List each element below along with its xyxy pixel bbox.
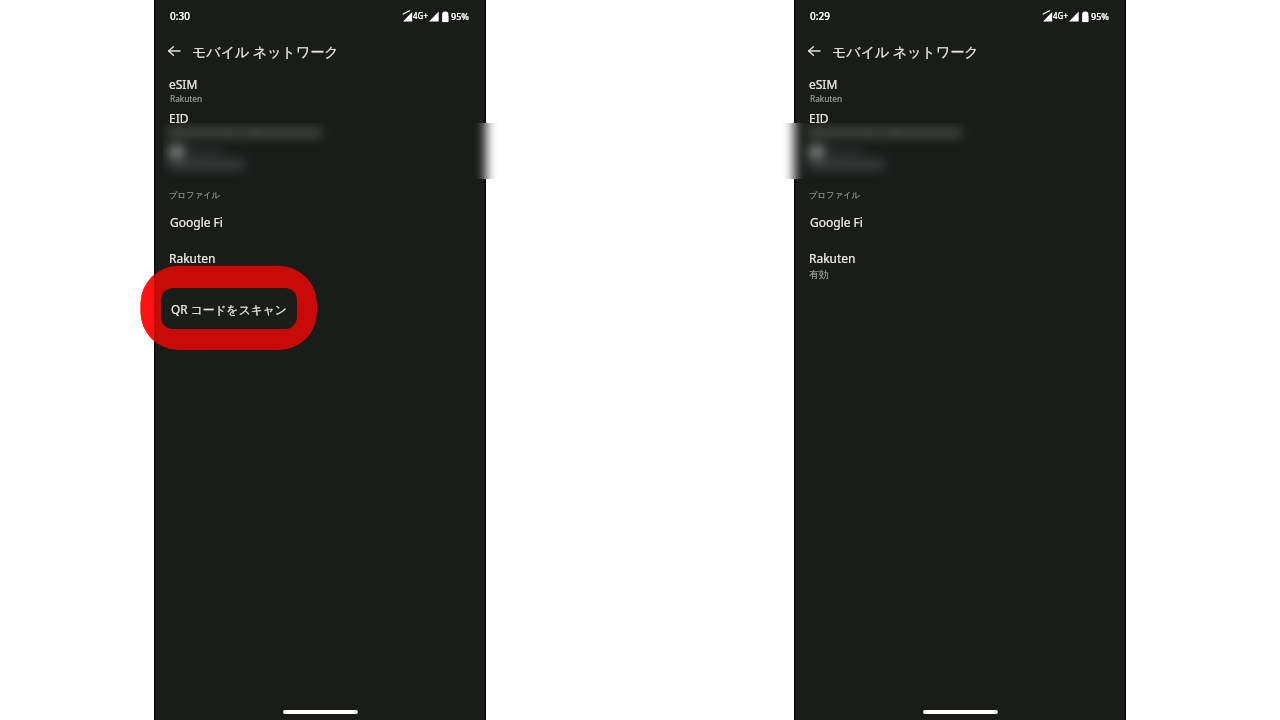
staticText: QR コードをスキャン xyxy=(171,301,287,317)
staticText: 4G+ xyxy=(413,10,428,21)
button[interactable]: EID xyxy=(794,106,1126,182)
staticText: モバイル ネットワーク xyxy=(832,42,979,61)
staticText: 0:29 xyxy=(810,9,830,23)
button[interactable]: Rakuten xyxy=(794,244,1126,282)
staticText: プロファイル xyxy=(169,190,220,200)
staticText: EID xyxy=(169,110,189,126)
button[interactable]: Rakuten xyxy=(154,244,486,282)
staticText: モバイル ネットワーク xyxy=(192,42,339,61)
staticText: Rakuten xyxy=(170,93,203,104)
staticText: プロファイル xyxy=(809,190,860,200)
button[interactable]: eSIM xyxy=(794,68,1126,106)
staticText: Google Fi xyxy=(810,214,863,230)
staticText: 95% xyxy=(451,10,469,22)
button[interactable]: Back xyxy=(800,37,828,65)
staticText: Rakuten xyxy=(810,93,843,104)
button[interactable]: Google Fi xyxy=(794,206,1126,244)
staticText: Rakuten xyxy=(169,250,216,266)
button[interactable]: EID xyxy=(154,106,486,182)
staticText: Rakuten xyxy=(809,250,856,266)
button[interactable]: QR コードをスキャン xyxy=(161,288,297,329)
button[interactable]: eSIM xyxy=(154,68,486,106)
staticText: 4G+ xyxy=(1053,10,1068,21)
button[interactable]: Google Fi xyxy=(154,206,486,244)
staticText: eSIM xyxy=(809,76,838,92)
staticText: 95% xyxy=(1091,10,1109,22)
staticText: eSIM xyxy=(169,76,198,92)
staticText: 0:30 xyxy=(170,9,190,23)
staticText: Google Fi xyxy=(170,214,223,230)
button[interactable]: Back xyxy=(160,37,188,65)
staticText: EID xyxy=(809,110,829,126)
staticText: 有効 xyxy=(809,268,829,281)
